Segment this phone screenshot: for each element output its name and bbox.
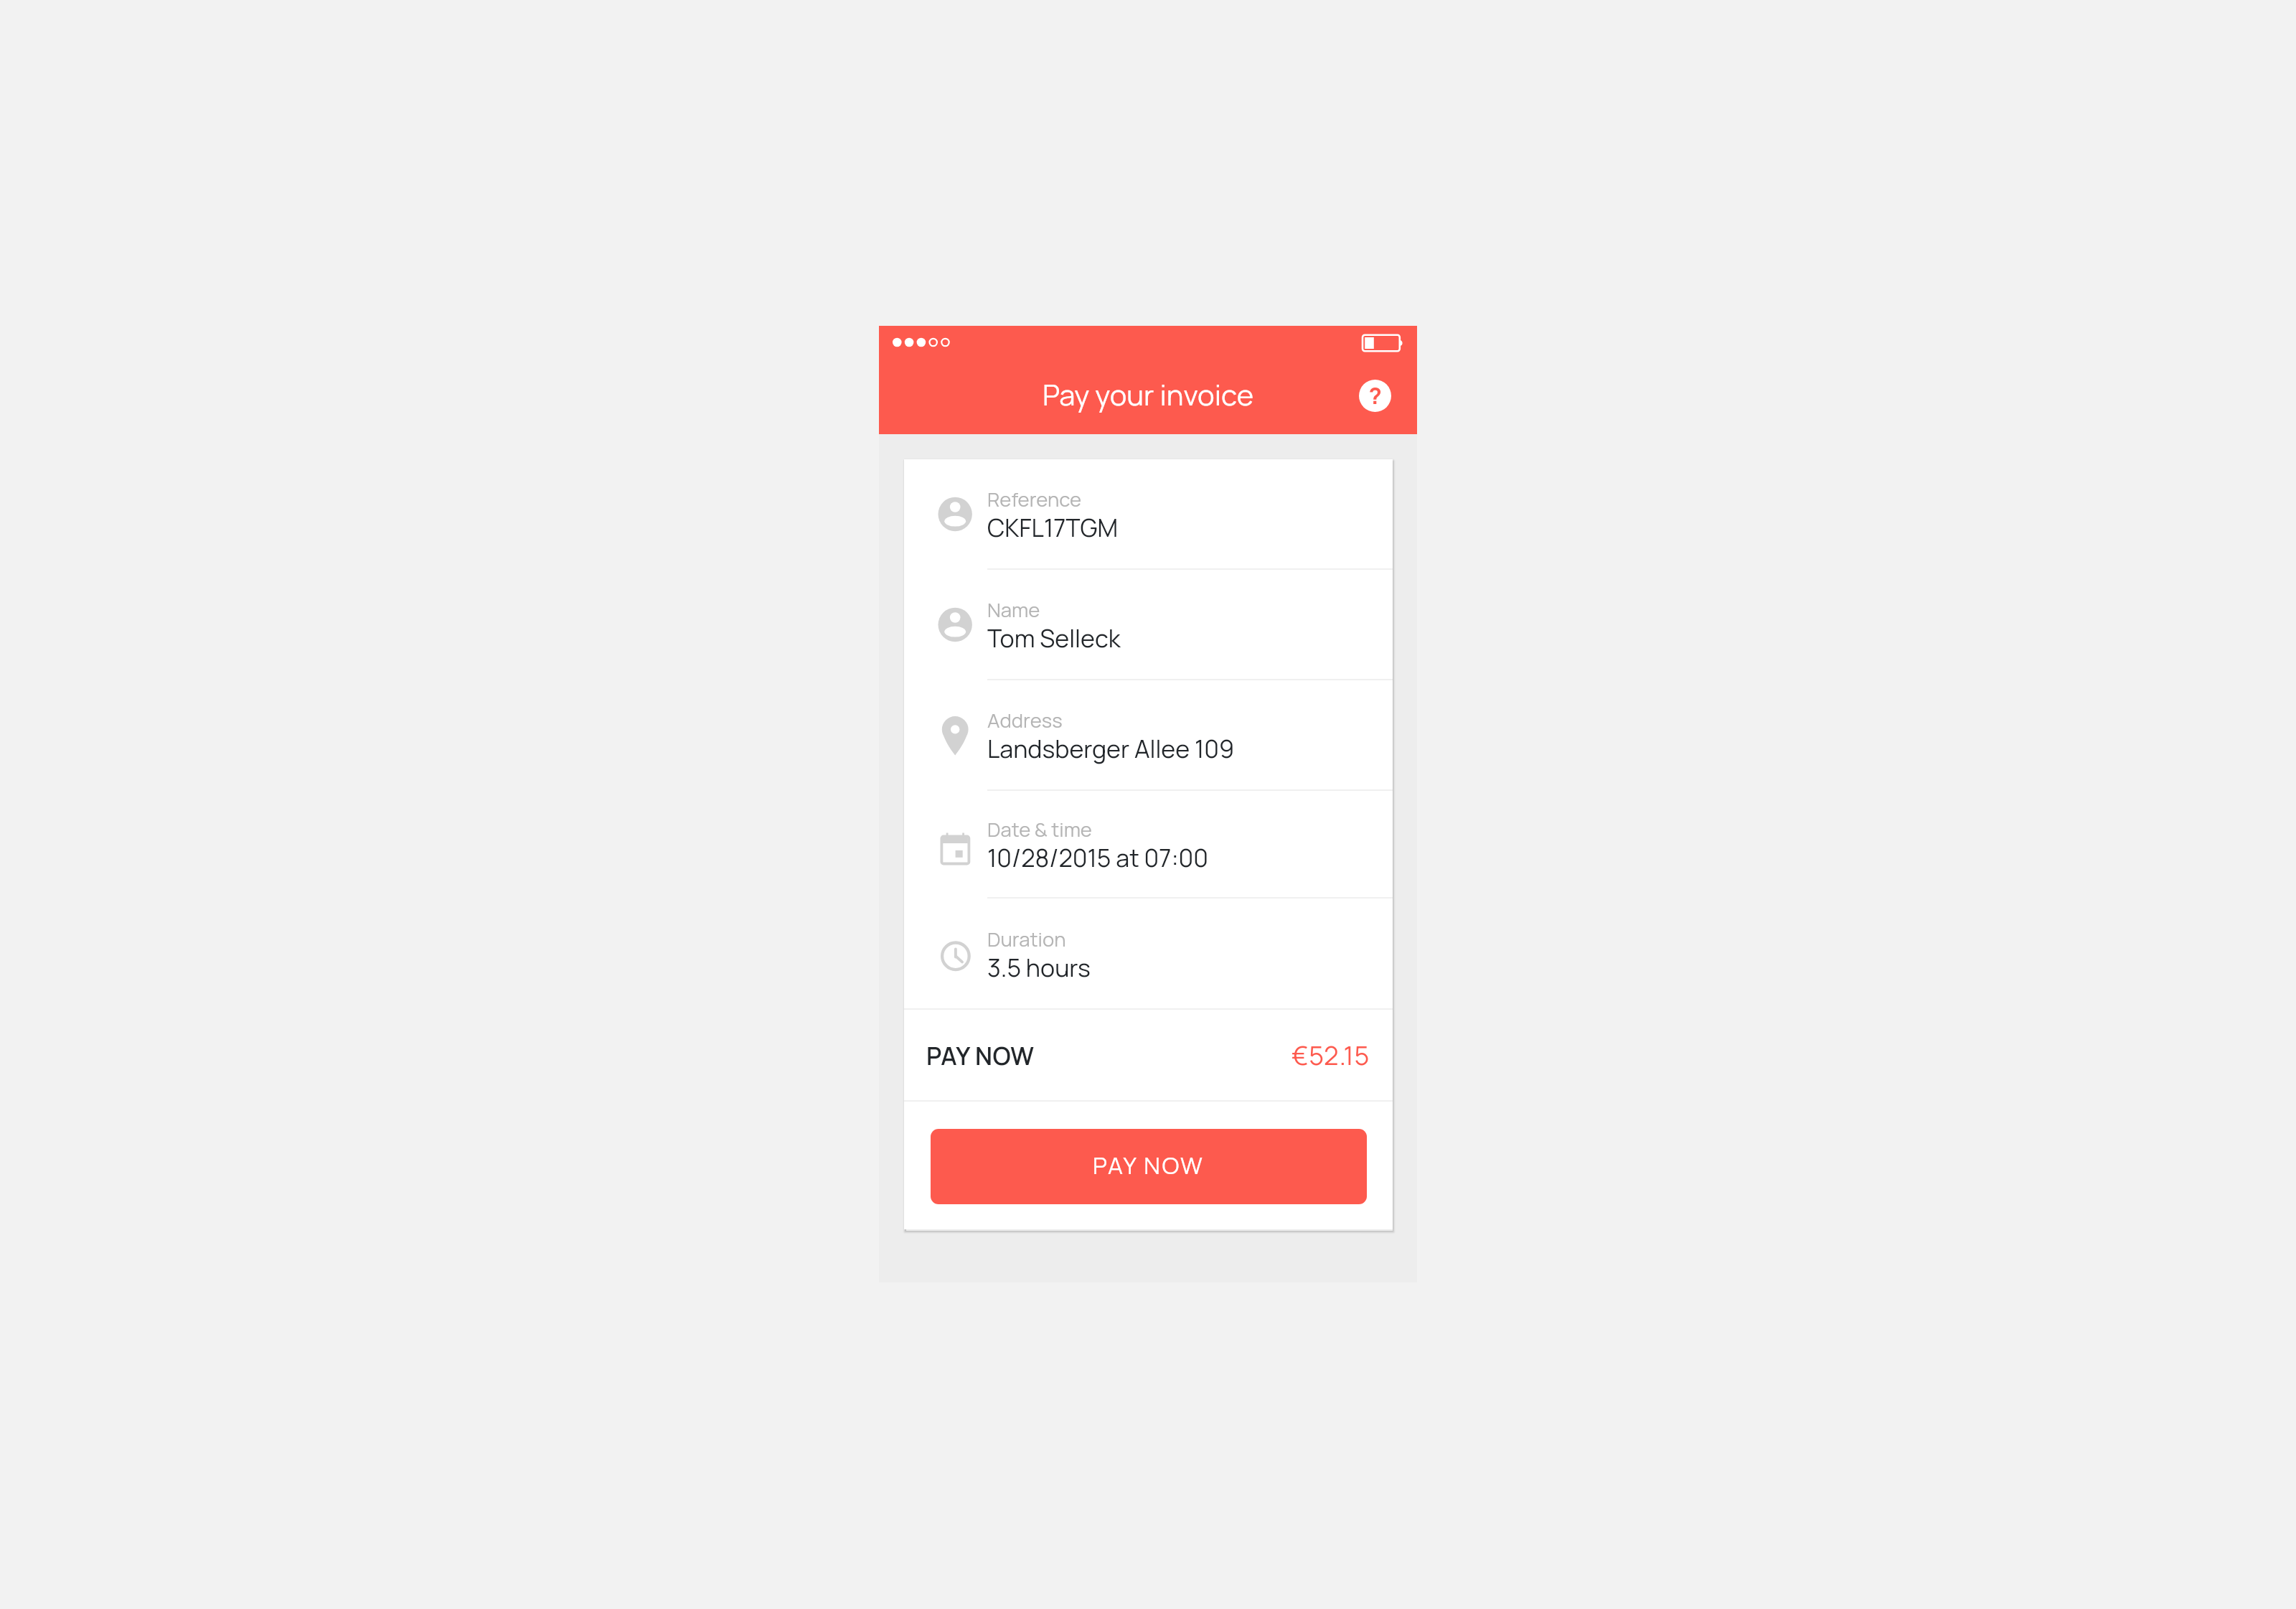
button[interactable]: Address bbox=[904, 680, 1393, 789]
button[interactable]: Date & time bbox=[904, 791, 1393, 897]
staticText: Pay your invoice bbox=[1043, 375, 1254, 414]
staticText: Address bbox=[987, 707, 1063, 734]
button[interactable]: Name bbox=[904, 570, 1393, 679]
staticText: Date & time bbox=[987, 816, 1092, 843]
staticText: 3.5 hours bbox=[987, 951, 1091, 984]
button[interactable]: PAY NOW bbox=[931, 1129, 1367, 1204]
staticText: Duration bbox=[987, 926, 1066, 953]
button[interactable]: Duration bbox=[904, 899, 1393, 1008]
staticText: PAY NOW bbox=[1093, 1149, 1205, 1181]
staticText: PAY NOW bbox=[926, 1039, 1035, 1072]
button[interactable]: PAY NOW bbox=[904, 1010, 1393, 1100]
staticText: 10/28/2015 at 07:00 bbox=[987, 841, 1209, 874]
staticText: Name bbox=[987, 596, 1040, 624]
staticText: ? bbox=[1368, 380, 1382, 411]
staticText: Tom Selleck bbox=[987, 621, 1121, 655]
staticText: €52.15 bbox=[1291, 1038, 1370, 1073]
button[interactable]: Help bbox=[1359, 380, 1391, 412]
staticText: Landsberger Allee 109 bbox=[987, 732, 1235, 765]
staticText: Reference bbox=[987, 486, 1082, 513]
button[interactable]: Reference bbox=[904, 459, 1393, 568]
staticText: CKFL17TGM bbox=[987, 511, 1119, 544]
